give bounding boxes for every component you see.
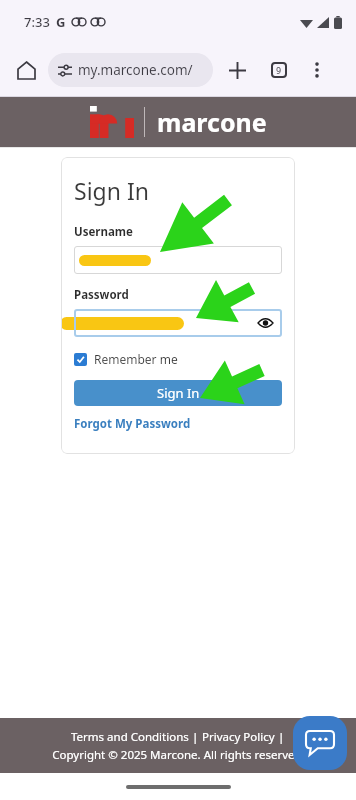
- button[interactable]: Show password: [74, 309, 282, 337]
- button[interactable]: Chat: [293, 716, 347, 770]
- staticText: |: [189, 729, 202, 745]
- staticText: my.marcone.com/UserLo: [78, 61, 213, 79]
- staticText: G: [56, 13, 66, 31]
- button[interactable]: Sign In: [74, 380, 282, 406]
- staticText: 7:33: [24, 13, 50, 31]
- staticText: |: [275, 729, 285, 745]
- button[interactable]: Forgot My Password: [74, 416, 191, 432]
- staticText: Terms and Conditions: [71, 729, 189, 745]
- staticText: Remember me: [94, 351, 178, 367]
- button[interactable]: Home: [6, 50, 46, 90]
- button[interactable]: New tab: [219, 52, 255, 88]
- button[interactable]: Show password: [255, 313, 275, 333]
- staticText: Sign In: [74, 175, 149, 206]
- button[interactable]: my.marcone.com/UserLo: [48, 53, 213, 87]
- staticText: 9: [276, 64, 282, 76]
- button[interactable]: Privacy Policy: [202, 729, 275, 745]
- button[interactable]: More options: [299, 52, 335, 88]
- staticText: Password: [74, 287, 129, 303]
- staticText: Sign In: [157, 384, 200, 402]
- staticText: marcone: [157, 105, 267, 139]
- staticText: Copyright © 2025 Marcone. All rights res…: [52, 747, 305, 763]
- button[interactable]: Terms and Conditions: [71, 729, 189, 745]
- button[interactable]: Remember me: [74, 351, 178, 367]
- button[interactable]: [74, 246, 282, 274]
- staticText: Forgot My Password: [74, 416, 191, 432]
- staticText: Username: [74, 224, 133, 240]
- button[interactable]: Tabs: [261, 52, 297, 88]
- staticText: Privacy Policy: [202, 729, 275, 745]
